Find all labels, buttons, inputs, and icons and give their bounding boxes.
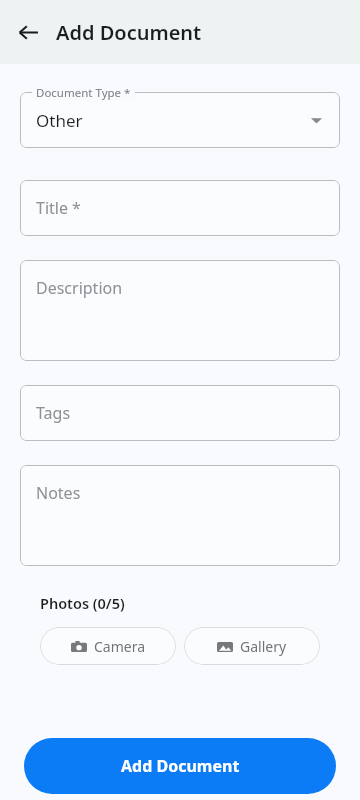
button[interactable]: Add Document	[24, 738, 336, 794]
staticText: Tags	[36, 402, 71, 424]
staticText: Description	[36, 277, 123, 299]
staticText: Document Type *	[36, 85, 131, 101]
staticText: Add Document	[56, 19, 202, 46]
button[interactable]: Gallery	[184, 627, 320, 665]
button[interactable]: Tags	[20, 385, 340, 441]
staticText: Other	[36, 109, 83, 132]
button[interactable]: Description	[20, 260, 340, 361]
button[interactable]: Back	[10, 14, 46, 50]
button[interactable]: Notes	[20, 465, 340, 566]
button[interactable]: Camera	[40, 627, 176, 665]
staticText: Gallery	[240, 637, 287, 656]
staticText: Title *	[36, 197, 81, 219]
staticText: Photos (0/5)	[40, 593, 125, 613]
staticText: Add Document	[121, 755, 240, 777]
staticText: Camera	[94, 637, 146, 656]
button[interactable]: Other	[20, 92, 340, 148]
button[interactable]: Title *	[20, 180, 340, 236]
staticText: Notes	[36, 482, 81, 504]
